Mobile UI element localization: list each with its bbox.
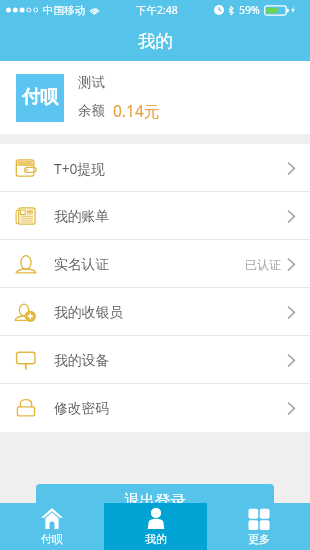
staticText: 实名认证 xyxy=(54,256,110,273)
button[interactable]: 更多 xyxy=(207,503,310,550)
staticText: 我的收银员 xyxy=(54,304,123,321)
staticText: 59% xyxy=(239,3,260,17)
staticText: 中国移动 xyxy=(43,4,85,17)
staticText: 余额 xyxy=(78,102,105,119)
staticText: 付呗 xyxy=(41,532,63,546)
button[interactable]: 付呗 xyxy=(0,503,104,550)
staticText: 我的设备 xyxy=(54,352,110,369)
button[interactable]: T+0提现 xyxy=(0,144,310,192)
staticText: 我的 xyxy=(138,30,173,52)
staticText: 下午2:48 xyxy=(136,3,178,17)
staticText: 更多 xyxy=(248,532,270,546)
staticText: 我的账单 xyxy=(54,208,110,225)
button[interactable]: 我的 xyxy=(104,503,207,550)
button[interactable]: 我的设备 xyxy=(0,336,310,384)
staticText: 测试 xyxy=(78,74,105,91)
button[interactable]: 修改密码 xyxy=(0,384,310,432)
staticText: 退出登录 xyxy=(124,491,186,511)
staticText: 0.14元 xyxy=(113,100,160,121)
button[interactable]: 我的账单 xyxy=(0,192,310,240)
staticText: 我的 xyxy=(145,532,167,546)
staticText: 已认证 xyxy=(245,257,281,272)
staticText: 付呗 xyxy=(22,86,58,109)
staticText: T+0提现 xyxy=(54,159,106,178)
button[interactable]: 实名认证 xyxy=(0,240,310,288)
staticText: 修改密码 xyxy=(54,400,110,417)
button[interactable]: 我的收银员 xyxy=(0,288,310,336)
button[interactable]: 退出登录 xyxy=(36,484,274,524)
